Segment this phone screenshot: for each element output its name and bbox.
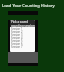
staticText: counting session	[11, 24, 35, 27]
button[interactable]: Session 2	[10, 30, 35, 33]
button[interactable]: Session 4	[10, 36, 35, 39]
staticText: Session 3	[11, 33, 23, 36]
button[interactable]: Session 5	[10, 39, 35, 42]
staticText: Session 6	[11, 42, 23, 45]
staticText: Session 5	[11, 39, 23, 42]
button[interactable]: Session 6	[10, 42, 35, 45]
staticText: Session 7	[11, 45, 23, 48]
staticText: Load Your Counting History	[2, 3, 55, 8]
staticText: Session 2	[11, 30, 23, 33]
button[interactable]: Session 1	[10, 27, 35, 30]
staticText: Session 1	[11, 27, 23, 30]
button[interactable]: Load Your Counting History	[0, 0, 64, 11]
button[interactable]: Session 7	[10, 45, 35, 48]
staticText: Pick a saved	[11, 20, 29, 24]
staticText: Session 4	[11, 36, 23, 39]
button[interactable]: Session 3	[10, 33, 35, 36]
